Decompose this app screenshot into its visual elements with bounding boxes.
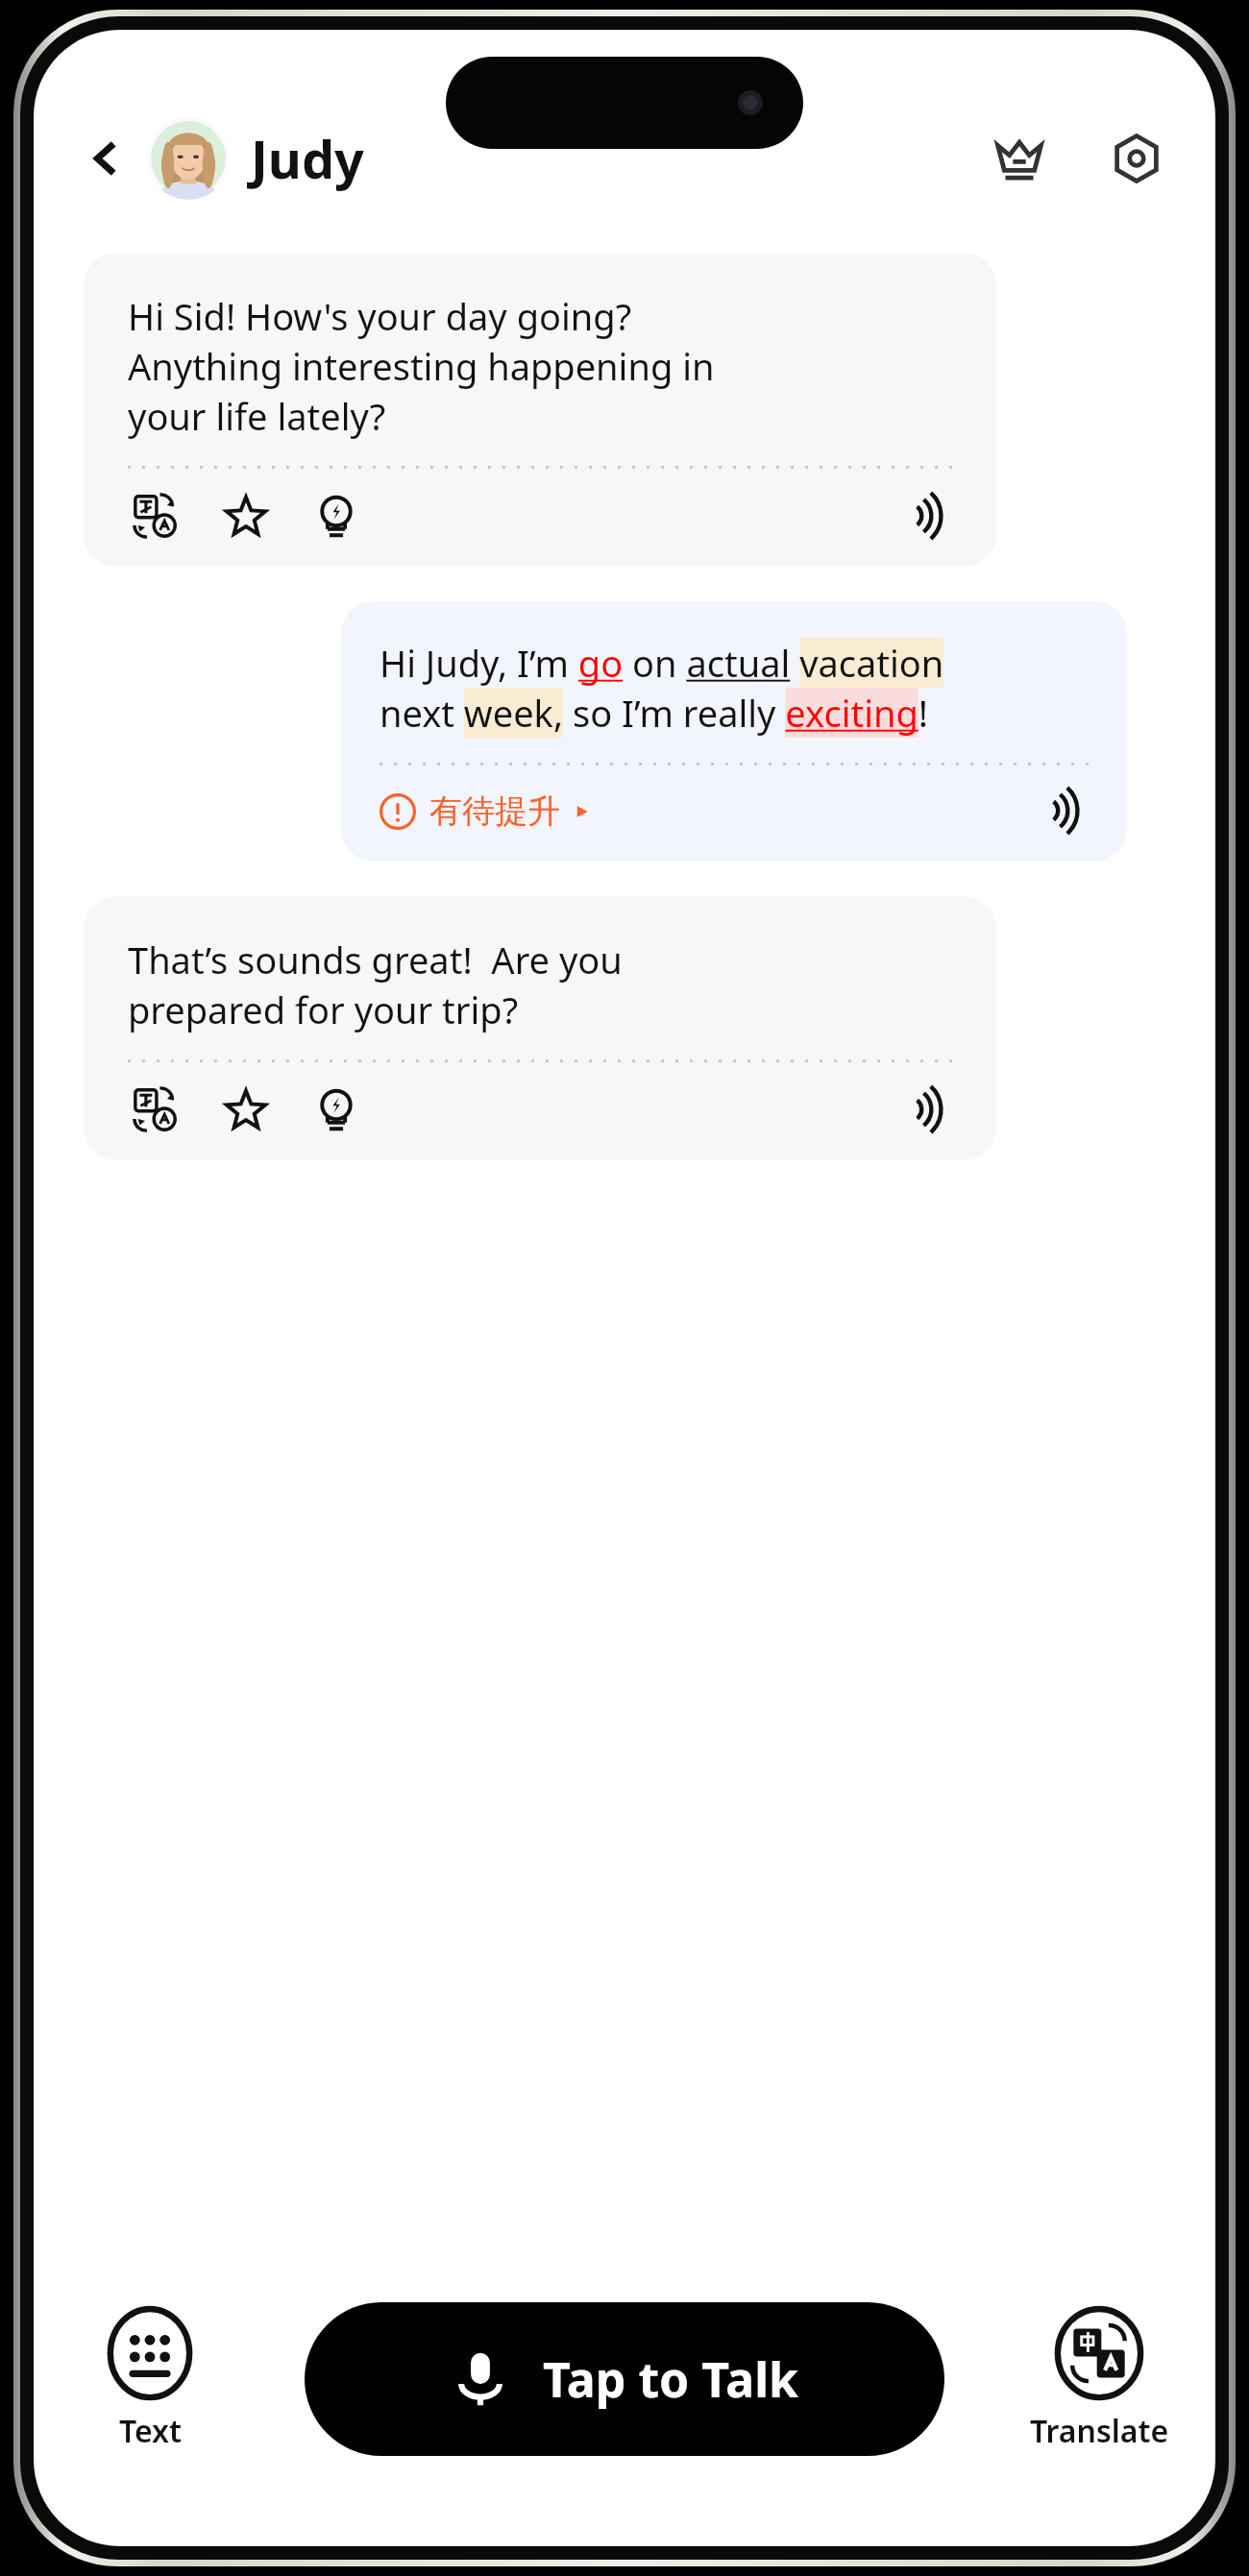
button[interactable]: Premium [983,122,1056,195]
button[interactable]: Translate [128,488,184,544]
staticText: That’s sounds great! Are you [128,935,623,984]
button[interactable]: Favorite [218,488,274,544]
button[interactable]: Tap to Talk [305,2302,944,2456]
button[interactable]: Hi Sid! How's your day going? [84,253,996,567]
staticText: next week, so I’m really exciting! [380,688,929,738]
button[interactable]: Settings [1100,122,1173,195]
staticText: Hi Sid! How's your day going? [128,291,632,341]
staticText: Anything interesting happening in [128,341,715,391]
button[interactable]: Translate [128,1081,184,1137]
staticText: Hi Judy, I’m go on actual vacation [380,638,944,688]
staticText: your life lately? [128,391,386,441]
button[interactable]: Text [78,2306,222,2452]
staticText: Judy [251,123,364,194]
button[interactable]: Play audio [896,488,952,544]
button[interactable]: That’s sounds great! Are you [84,896,996,1160]
staticText: Translate [1030,2410,1169,2452]
staticText: Text [119,2410,182,2452]
button[interactable]: Hint [308,488,364,544]
button[interactable]: Profile photo [147,117,230,200]
button[interactable]: Hint [308,1081,364,1137]
button[interactable]: Back [76,128,137,189]
staticText: Tap to Talk [543,2346,799,2412]
staticText: prepared for your trip? [128,984,519,1034]
button[interactable]: Play audio [896,1081,952,1137]
staticText: 有待提升 [429,790,560,832]
button[interactable]: Play audio [1033,783,1089,838]
button[interactable]: Hi Judy, I’m go on actual vacation [341,601,1127,862]
button[interactable]: Translate [1027,2306,1171,2452]
button[interactable]: Favorite [218,1081,274,1137]
button[interactable]: 有待提升 [380,790,600,832]
